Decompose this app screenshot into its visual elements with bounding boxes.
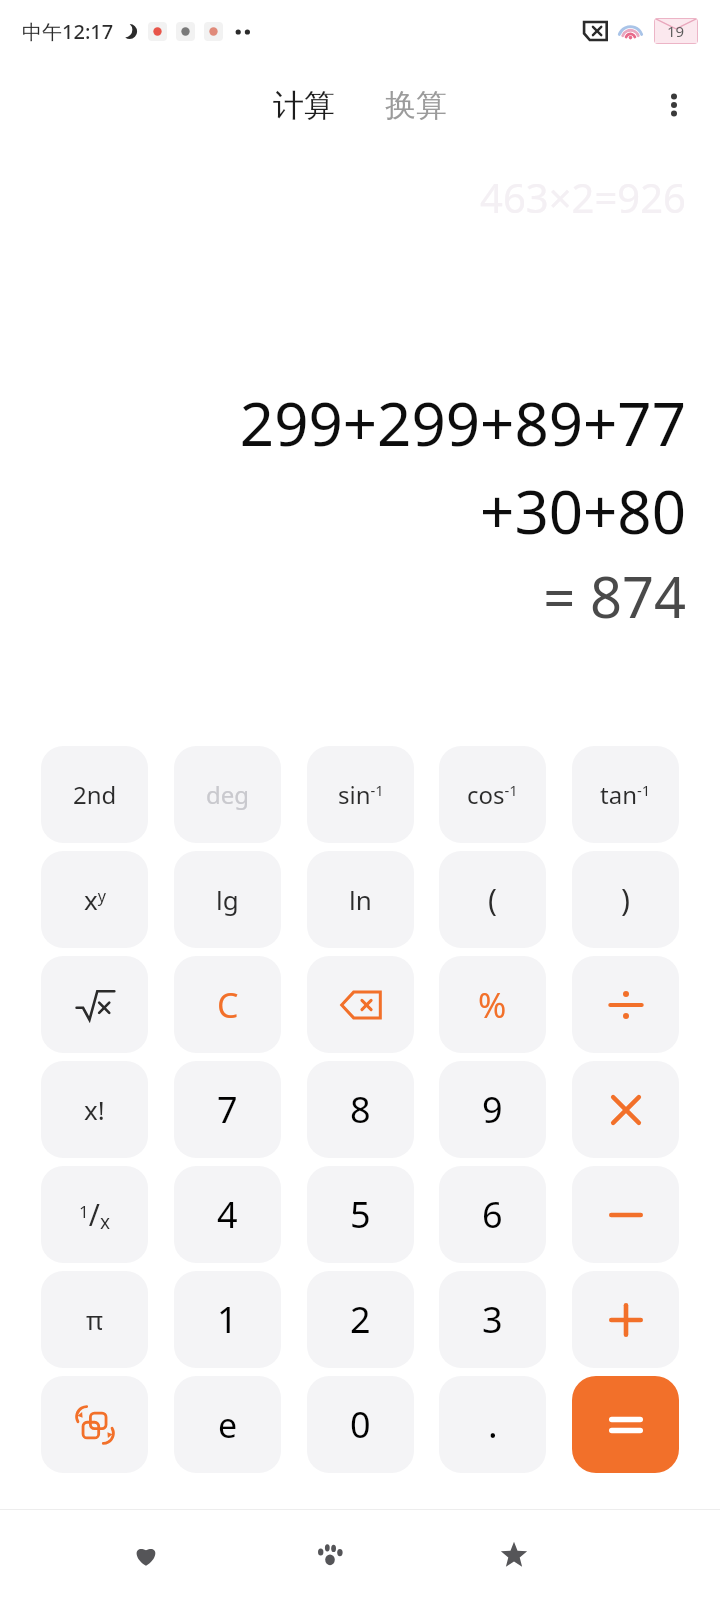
staticText: 299+299+89+77 +30+80: [34, 382, 686, 552]
button[interactable]: ): [572, 851, 679, 948]
button[interactable]: lg: [174, 851, 281, 948]
button[interactable]: 8: [307, 1061, 414, 1158]
staticText: ): [621, 879, 630, 920]
staticText: 3: [482, 1295, 503, 1344]
staticText: 6: [482, 1190, 503, 1239]
button[interactable]: .: [439, 1376, 546, 1473]
button[interactable]: 7: [174, 1061, 281, 1158]
button[interactable]: deg: [174, 746, 281, 843]
button[interactable]: ln: [307, 851, 414, 948]
button[interactable]: 3: [439, 1271, 546, 1368]
button[interactable]: 0: [307, 1376, 414, 1473]
staticText: sin-1: [338, 778, 384, 811]
staticText: 9: [482, 1085, 503, 1134]
staticText: = 874: [34, 558, 686, 634]
button[interactable]: 1/x: [41, 1166, 148, 1263]
button[interactable]: 9: [439, 1061, 546, 1158]
button[interactable]: 2nd: [41, 746, 148, 843]
button[interactable]: e: [174, 1376, 281, 1473]
button[interactable]: Favorites: [110, 1519, 182, 1591]
button[interactable]: 1: [174, 1271, 281, 1368]
button[interactable]: Divide: [572, 956, 679, 1053]
staticText: 4: [217, 1190, 238, 1239]
button[interactable]: x!: [41, 1061, 148, 1158]
staticText: 1: [217, 1295, 238, 1344]
button[interactable]: Minus: [572, 1166, 679, 1263]
button[interactable]: More options: [646, 77, 702, 133]
staticText: C: [217, 982, 239, 1028]
button[interactable]: tan-1: [572, 746, 679, 843]
staticText: 0: [350, 1400, 371, 1449]
staticText: 换算: [385, 86, 447, 125]
staticText: 8: [350, 1085, 371, 1134]
staticText: xy: [84, 882, 106, 917]
staticText: cos-1: [467, 778, 518, 811]
staticText: 2: [350, 1295, 371, 1344]
staticText: 1/x: [79, 1194, 110, 1235]
staticText: e: [218, 1402, 238, 1448]
staticText: 7: [217, 1085, 238, 1134]
staticText: x!: [84, 1092, 105, 1127]
button[interactable]: 5: [307, 1166, 414, 1263]
staticText: 计算: [273, 86, 335, 125]
button[interactable]: Equals: [572, 1376, 679, 1473]
button[interactable]: Star: [478, 1519, 550, 1591]
staticText: ln: [349, 882, 372, 917]
button[interactable]: Paw: [294, 1519, 366, 1591]
staticText: 中午12:17: [22, 18, 114, 45]
staticText: deg: [206, 778, 250, 811]
button[interactable]: Plus: [572, 1271, 679, 1368]
staticText: 5: [350, 1190, 371, 1239]
staticText: 463×2=926: [34, 170, 686, 224]
button[interactable]: xy: [41, 851, 148, 948]
staticText: 19: [667, 21, 685, 41]
button[interactable]: Square root: [41, 956, 148, 1053]
staticText: lg: [216, 882, 239, 917]
button[interactable]: 2: [307, 1271, 414, 1368]
staticText: %: [478, 982, 507, 1028]
button[interactable]: sin-1: [307, 746, 414, 843]
button[interactable]: 6: [439, 1166, 546, 1263]
staticText: (: [488, 879, 497, 920]
button[interactable]: Multiply: [572, 1061, 679, 1158]
button[interactable]: Swap: [41, 1376, 148, 1473]
button[interactable]: π: [41, 1271, 148, 1368]
button[interactable]: 4: [174, 1166, 281, 1263]
button[interactable]: C: [174, 956, 281, 1053]
button[interactable]: %: [439, 956, 546, 1053]
button[interactable]: 计算: [263, 80, 345, 131]
staticText: 2nd: [73, 778, 117, 811]
staticText: tan-1: [600, 778, 651, 811]
button[interactable]: Backspace: [307, 956, 414, 1053]
button[interactable]: cos-1: [439, 746, 546, 843]
button[interactable]: 换算: [375, 80, 457, 131]
staticText: π: [86, 1302, 103, 1337]
button[interactable]: (: [439, 851, 546, 948]
staticText: .: [488, 1400, 498, 1449]
